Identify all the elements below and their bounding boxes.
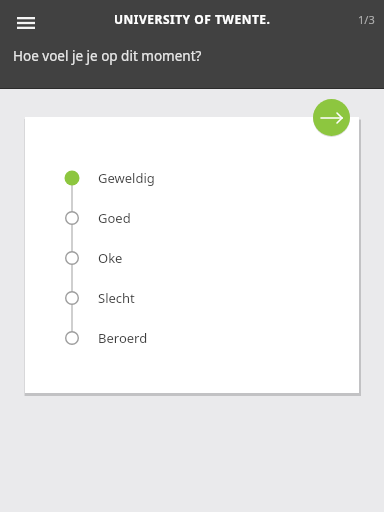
staticText: Oke	[98, 249, 123, 267]
button[interactable]: Open navigation menu	[8, 5, 44, 41]
staticText: Geweldig	[98, 169, 155, 187]
button[interactable]: Beroerd	[25, 320, 359, 356]
staticText: Goed	[98, 209, 131, 227]
button[interactable]: Geweldig	[25, 160, 359, 196]
staticText: Slecht	[98, 289, 135, 307]
staticText: Hoe voel je je op dit moment?	[13, 47, 202, 65]
button[interactable]: Slecht	[25, 280, 359, 316]
staticText: UNIVERSITY OF TWENTE.	[114, 11, 271, 27]
button[interactable]: Goed	[25, 200, 359, 236]
button[interactable]: Oke	[25, 240, 359, 276]
staticText: Beroerd	[98, 329, 148, 347]
staticText: 1/3	[358, 12, 375, 27]
button[interactable]: Next question	[313, 99, 350, 136]
